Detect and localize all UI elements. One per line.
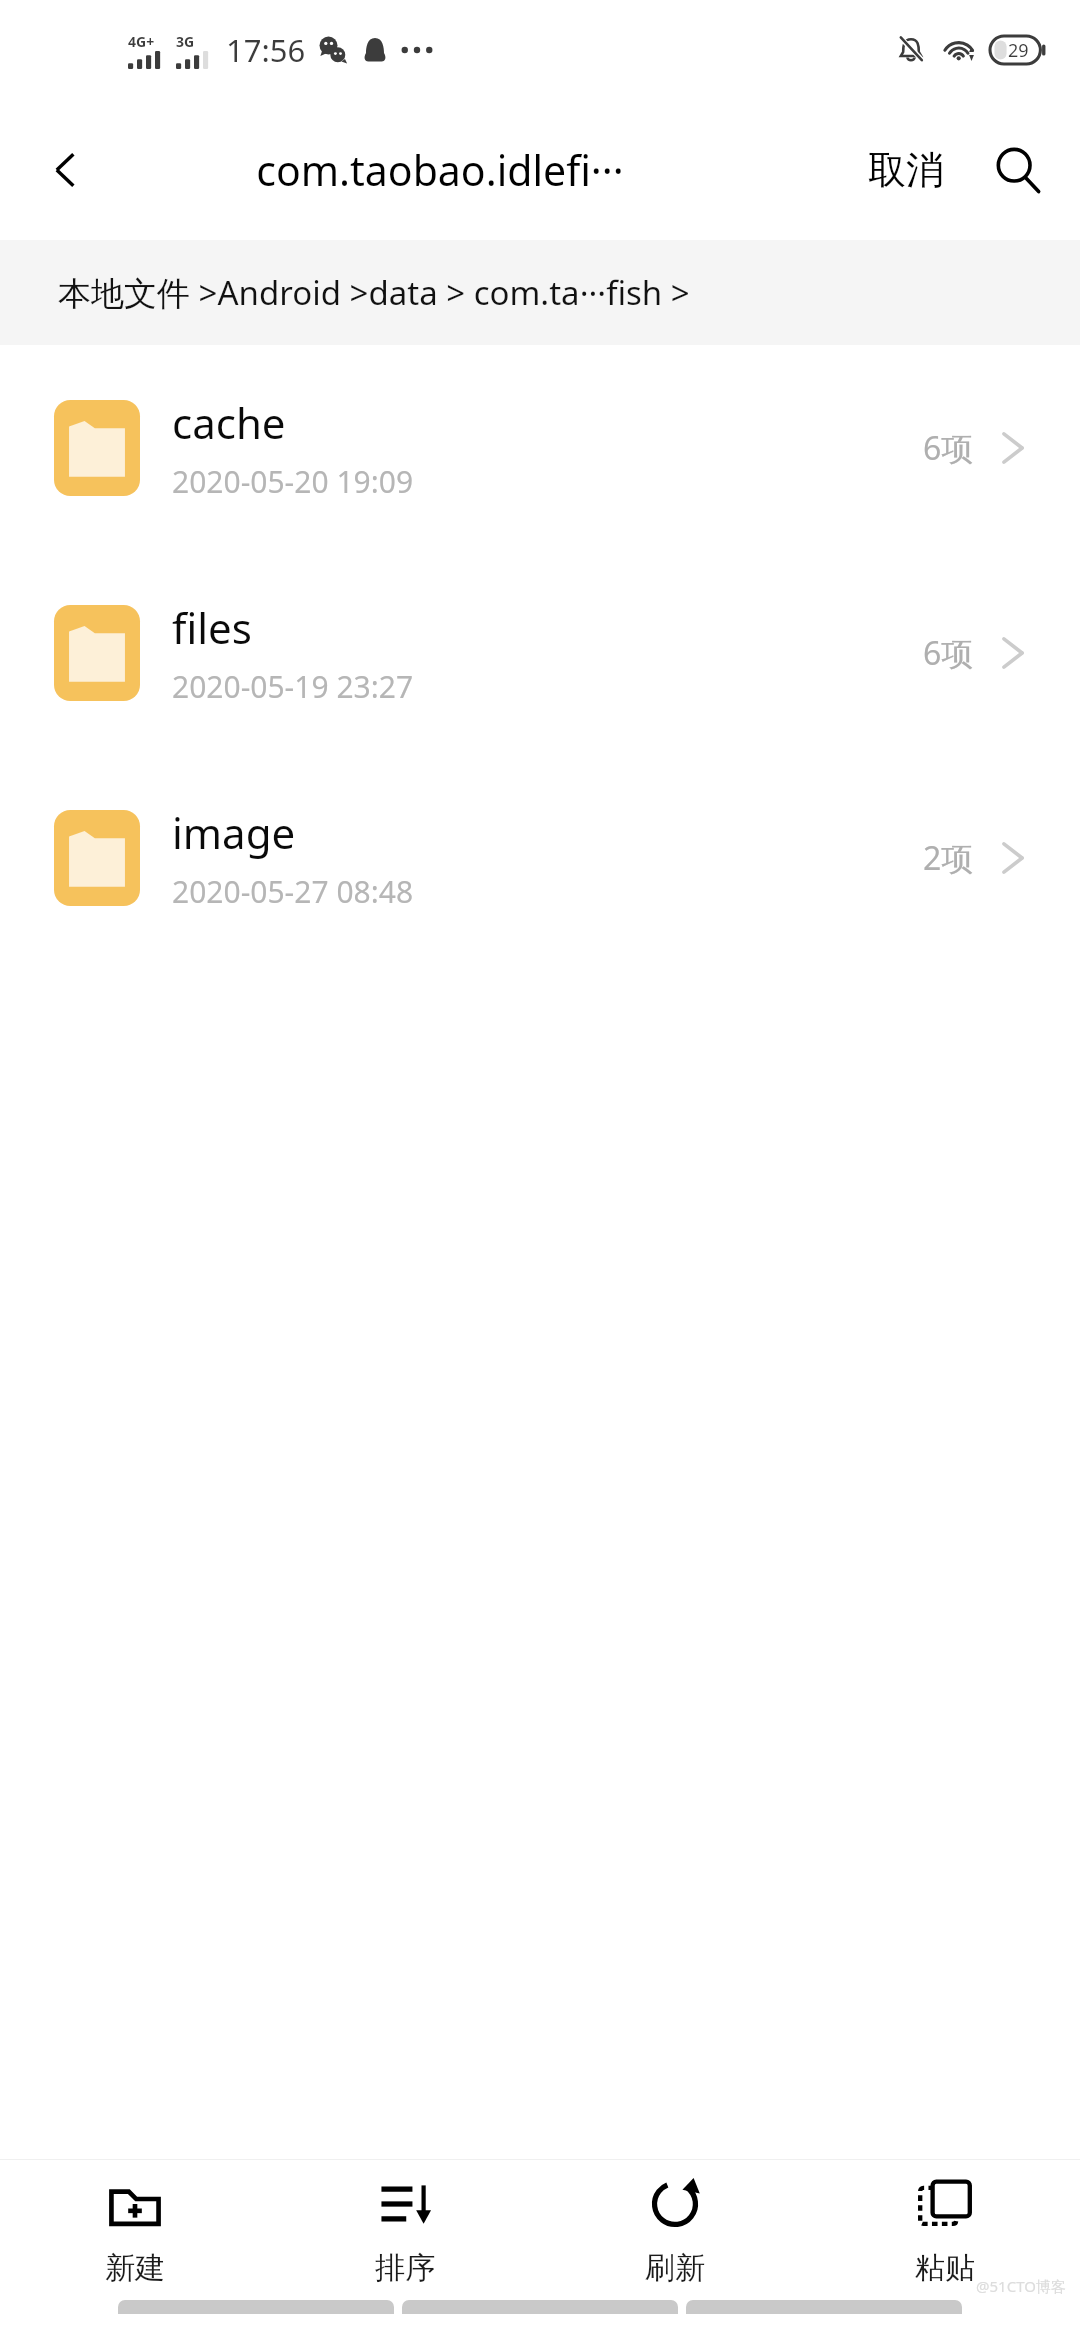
button[interactable]: image <box>0 755 1080 960</box>
staticText: 2020-05-20 19:09 <box>172 461 414 502</box>
staticText: 排序 <box>375 2249 435 2287</box>
staticText: 6项 <box>923 631 974 675</box>
staticText: 刷新 <box>645 2249 705 2287</box>
staticText: 新建 <box>105 2249 165 2287</box>
staticText: @51CTO博客 <box>976 2276 1066 2296</box>
staticText: 2020-05-19 23:27 <box>172 666 414 707</box>
staticText: 3G <box>176 32 195 51</box>
staticText: 2020-05-27 08:48 <box>172 871 414 912</box>
staticText: 4G+ <box>128 32 155 51</box>
staticText: image <box>172 804 296 861</box>
staticText: com.taobao.idlefi··· <box>256 142 624 198</box>
button[interactable]: 本地文件 >Android >data > com.ta···fish > <box>0 240 1080 345</box>
staticText: 粘贴 <box>915 2249 975 2287</box>
button[interactable]: Back <box>26 130 106 210</box>
button[interactable]: 取消 <box>858 132 954 208</box>
button[interactable]: files <box>0 550 1080 755</box>
staticText: files <box>172 599 252 656</box>
button[interactable]: 粘贴 <box>810 2160 1080 2300</box>
staticText: 6项 <box>923 426 974 470</box>
button[interactable]: Search <box>982 134 1054 206</box>
staticText: 取消 <box>868 146 944 194</box>
button[interactable]: cache <box>0 345 1080 550</box>
button[interactable]: 刷新 <box>540 2160 810 2300</box>
staticText: 2项 <box>923 836 974 880</box>
button[interactable]: 排序 <box>270 2160 540 2300</box>
staticText: cache <box>172 394 286 451</box>
staticText: 17:56 <box>226 29 306 71</box>
staticText: 本地文件 >Android >data > com.ta···fish > <box>58 270 690 315</box>
button[interactable]: 新建 <box>0 2160 270 2300</box>
staticText: 29 <box>1008 38 1029 63</box>
